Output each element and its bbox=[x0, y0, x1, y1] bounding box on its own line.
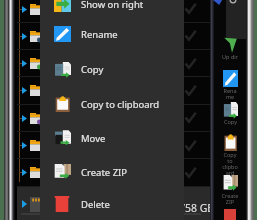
staticText: Move bbox=[81, 132, 106, 145]
staticText: Rename bbox=[81, 28, 118, 41]
button[interactable]: Copy to clipboard bbox=[40, 90, 184, 118]
staticText: Rename bbox=[221, 87, 239, 101]
staticText: Show on right bbox=[81, 0, 144, 11]
staticText: Copy bbox=[81, 63, 104, 76]
staticText: Create ZIP bbox=[81, 166, 128, 179]
staticText: Copy to clipboard bbox=[81, 98, 160, 111]
button[interactable]: Delete bbox=[40, 190, 184, 218]
button[interactable] bbox=[17, 159, 211, 185]
button[interactable] bbox=[17, 0, 211, 22]
button[interactable]: Copy bbox=[221, 101, 239, 125]
button[interactable] bbox=[17, 23, 211, 49]
staticText: Create ZIP bbox=[221, 192, 239, 206]
button[interactable] bbox=[17, 132, 211, 158]
staticText: Delete bbox=[81, 198, 110, 211]
button[interactable]: Rename bbox=[40, 20, 184, 48]
staticText: Copy to clipboard bbox=[221, 151, 239, 177]
staticText: /58 GB bbox=[181, 201, 215, 215]
button[interactable]: Up dir bbox=[221, 36, 239, 60]
button[interactable]: Move bbox=[40, 124, 184, 152]
button[interactable] bbox=[17, 105, 211, 131]
staticText: Up dir bbox=[222, 53, 238, 60]
staticText: Copy bbox=[224, 118, 237, 125]
button[interactable]: Show on right bbox=[40, 0, 184, 18]
button[interactable] bbox=[17, 50, 211, 76]
button[interactable]: Rename bbox=[221, 70, 239, 101]
button[interactable]: Copy bbox=[40, 55, 184, 83]
button[interactable]: Copy to clipboard bbox=[221, 134, 239, 177]
button[interactable] bbox=[17, 77, 211, 103]
button[interactable]: Create ZIP bbox=[40, 158, 184, 186]
button[interactable]: Create ZIP bbox=[221, 175, 239, 206]
